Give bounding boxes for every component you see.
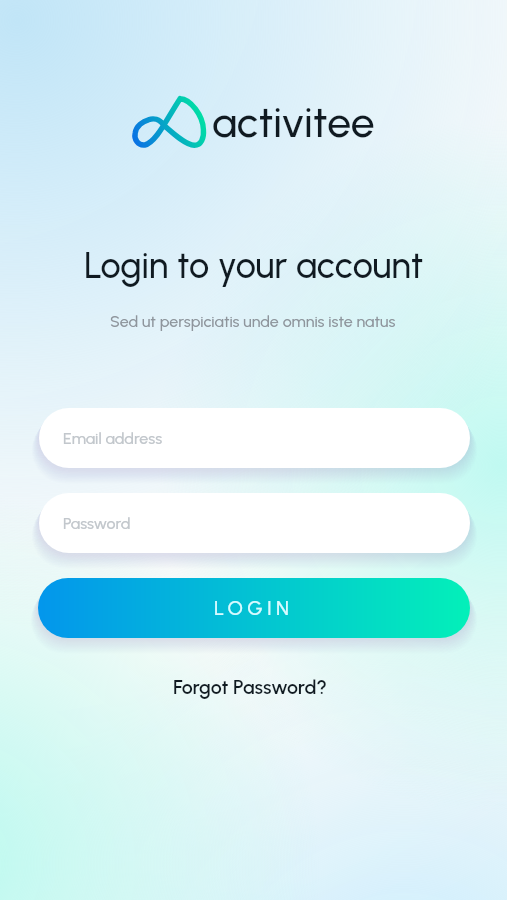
- staticText: LOGIN: [214, 596, 294, 620]
- button[interactable]: Password: [39, 493, 470, 553]
- button[interactable]: LOGIN: [38, 578, 470, 638]
- button[interactable]: Email address: [39, 408, 470, 468]
- staticText: Login to your account: [84, 244, 424, 287]
- staticText: Sed ut perspiciatis unde omnis iste natu…: [110, 312, 396, 331]
- other: activitee logo: [132, 96, 206, 149]
- button[interactable]: Forgot Password?: [160, 666, 340, 708]
- staticText: Password: [63, 514, 131, 533]
- staticText: activitee: [212, 96, 375, 147]
- staticText: Forgot Password?: [173, 675, 327, 699]
- staticText: Email address: [63, 429, 163, 448]
